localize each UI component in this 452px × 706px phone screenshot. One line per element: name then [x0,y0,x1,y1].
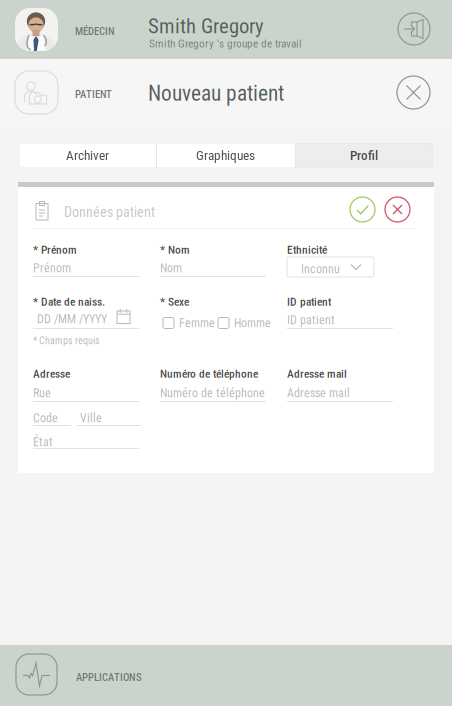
staticText: Inconnu [301,262,340,276]
staticText: * Champs requis [33,335,100,347]
button[interactable]: Femme [163,316,215,330]
staticText: Code [33,411,58,425]
button[interactable]: Inconnu [287,257,374,277]
staticText: Numéro de téléphone [160,367,258,380]
staticText: Archiver [66,148,109,163]
button[interactable]: Annuler [385,197,410,222]
staticText: Graphiques [196,148,255,163]
button[interactable]: Valider [350,197,375,222]
staticText: * Date de naiss. [33,295,105,308]
staticText: Ville [80,411,102,425]
button[interactable]: PATIENT [0,59,452,127]
staticText: APPLICATIONS [76,671,142,683]
staticText: Nom [160,261,182,275]
staticText: * Nom [160,243,190,256]
button[interactable]: Profil [295,143,433,168]
button[interactable]: APPLICATIONS [0,645,452,706]
staticText: Nouveau patient [148,81,284,106]
staticText: Ethnicité [287,243,327,256]
staticText: ID patient [287,313,335,327]
staticText: Prénom [33,261,71,275]
staticText: Adresse mail [287,386,350,400]
staticText: PATIENT [75,88,112,100]
staticText: Smith Gregory 's groupe de travail [149,37,302,50]
button[interactable]: MÉDECIN [0,0,452,59]
button[interactable]: Homme [218,316,271,330]
staticText: Adresse [33,367,70,380]
button[interactable]: Graphiques [156,143,295,168]
staticText: Profil [350,148,378,163]
staticText: * Prénom [33,243,77,256]
button[interactable]: Archiver [19,143,156,168]
staticText: Homme [234,316,271,330]
staticText: Numéro de téléphone [160,386,265,400]
staticText: État [33,435,53,449]
staticText: DD /MM /YYYY [37,312,107,326]
staticText: Smith Gregory [148,14,264,38]
staticText: ID patient [287,295,331,308]
staticText: MÉDECIN [75,25,115,37]
staticText: Données patient [64,204,155,220]
staticText: Rue [33,386,51,400]
staticText: * Sexe [160,295,189,308]
staticText: Femme [179,316,215,330]
staticText: Adresse mail [287,367,347,380]
